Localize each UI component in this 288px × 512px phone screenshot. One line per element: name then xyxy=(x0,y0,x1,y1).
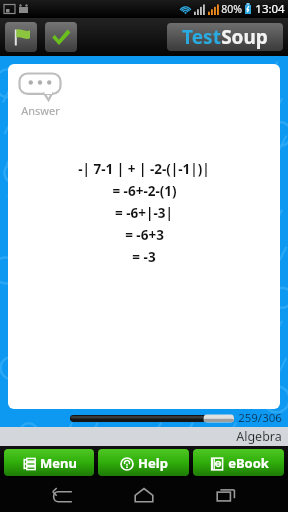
staticText: = -6+|-3| xyxy=(115,204,173,222)
button[interactable]: Help xyxy=(98,449,189,476)
button[interactable]: Flag question xyxy=(5,22,37,52)
staticText: Soup xyxy=(221,24,268,50)
button[interactable]: Recent apps xyxy=(206,478,246,512)
button[interactable]: Back xyxy=(42,478,82,512)
button[interactable]: Test xyxy=(167,23,283,51)
staticText: eBook xyxy=(228,454,269,472)
staticText: 259/306 xyxy=(238,410,282,426)
staticText: Test xyxy=(182,24,221,50)
staticText: = -6+3 xyxy=(125,226,164,244)
staticText: Menu xyxy=(40,454,77,472)
button[interactable]: Mark correct xyxy=(45,22,77,52)
staticText: Answer xyxy=(21,103,60,118)
button[interactable]: Menu xyxy=(4,449,94,476)
staticText: = -6+-2-(1) xyxy=(112,182,177,200)
button[interactable]: Show answer xyxy=(18,72,62,118)
button[interactable] xyxy=(70,413,234,424)
button[interactable]: Home xyxy=(124,478,164,512)
staticText: 13:04 xyxy=(255,1,285,17)
staticText: 80% xyxy=(221,2,242,16)
staticText: Help xyxy=(138,454,168,472)
button[interactable]: eBook xyxy=(193,449,284,476)
staticText: -| 7-1 | + | -2-(|-1|)| xyxy=(78,160,210,178)
staticText: Algebra xyxy=(236,428,282,445)
staticText: = -3 xyxy=(132,248,156,266)
